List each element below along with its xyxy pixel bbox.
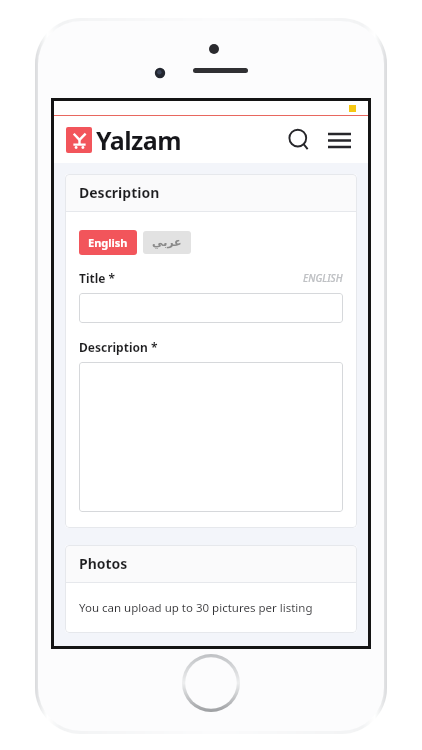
- button[interactable]: عربي: [143, 231, 191, 254]
- staticText: ENGLISH: [303, 271, 343, 285]
- staticText: Yalzam: [96, 123, 181, 157]
- button[interactable]: [79, 362, 343, 512]
- staticText: Description: [79, 183, 160, 202]
- button[interactable]: Menu: [322, 123, 356, 157]
- button[interactable]: English: [79, 230, 137, 255]
- staticText: Description *: [79, 339, 158, 355]
- staticText: Photos: [79, 554, 128, 573]
- staticText: Title *: [79, 270, 116, 286]
- staticText: You can upload up to 30 pictures per lis…: [79, 600, 313, 616]
- button[interactable]: [79, 293, 343, 323]
- button[interactable]: Search: [282, 123, 316, 157]
- staticText: عربي: [152, 236, 182, 249]
- staticText: English: [88, 235, 128, 250]
